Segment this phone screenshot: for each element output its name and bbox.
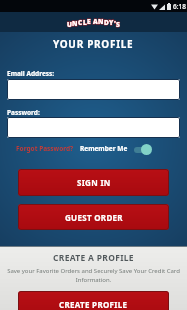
staticText: CREATE A PROFILE: [53, 252, 134, 264]
staticText: U: [67, 20, 72, 29]
staticText: ': [114, 19, 116, 28]
staticText: E: [87, 17, 91, 26]
staticText: YOUR PROFILE: [53, 37, 134, 51]
staticText: U: [67, 20, 72, 29]
staticText: S: [116, 20, 120, 29]
staticText: C: [78, 18, 83, 27]
staticText: Y: [109, 18, 114, 27]
button[interactable]: GUEST ORDER: [18, 204, 169, 230]
staticText: N: [98, 17, 104, 26]
staticText: GUEST ORDER: [65, 212, 123, 223]
staticText: [91, 17, 93, 26]
staticText: A: [93, 17, 98, 26]
staticText: CREATE PROFILE: [59, 299, 128, 310]
staticText: SIGN IN: [77, 177, 111, 188]
staticText: D: [104, 18, 109, 27]
staticText: Password:: [7, 108, 40, 117]
staticText: C: [78, 18, 83, 27]
staticText: L: [83, 18, 87, 27]
button[interactable]: Forgot Password?: [16, 144, 74, 153]
staticText: S: [116, 20, 120, 29]
button[interactable]: [7, 117, 180, 138]
staticText: [91, 17, 93, 26]
button[interactable]: [7, 79, 180, 100]
button[interactable]: SIGN IN: [18, 169, 169, 196]
staticText: Email Address:: [7, 69, 55, 78]
staticText: 6:18: [173, 2, 186, 11]
staticText: N: [72, 19, 78, 28]
button[interactable]: [133, 142, 155, 156]
staticText: N: [98, 17, 104, 26]
button[interactable]: CREATE PROFILE: [18, 291, 169, 310]
staticText: D: [104, 18, 109, 27]
staticText: A: [93, 17, 98, 26]
staticText: L: [83, 18, 87, 27]
staticText: Save your Favorite Orders and Securely S…: [7, 267, 180, 283]
staticText: Remember Me: [80, 144, 128, 153]
staticText: ': [114, 19, 116, 28]
staticText: N: [72, 19, 78, 28]
staticText: E: [87, 17, 91, 26]
staticText: Y: [109, 18, 114, 27]
